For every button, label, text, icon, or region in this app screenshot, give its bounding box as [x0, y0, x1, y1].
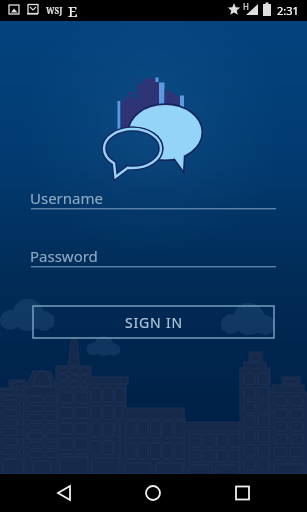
staticText: Username [30, 188, 103, 208]
staticText: E [68, 1, 78, 21]
button[interactable]: SIGN IN [33, 306, 274, 338]
button[interactable]: Recent apps [219, 476, 267, 512]
button[interactable]: Back [40, 476, 88, 512]
button[interactable]: Username field [31, 186, 276, 212]
staticText: WSJ [46, 5, 63, 16]
staticText: H [243, 1, 249, 12]
button[interactable]: Password field [31, 244, 276, 270]
staticText: SIGN IN [125, 313, 183, 332]
button[interactable]: Home [129, 476, 177, 512]
staticText: Password [30, 246, 98, 266]
staticText: 2:31 [277, 3, 299, 18]
